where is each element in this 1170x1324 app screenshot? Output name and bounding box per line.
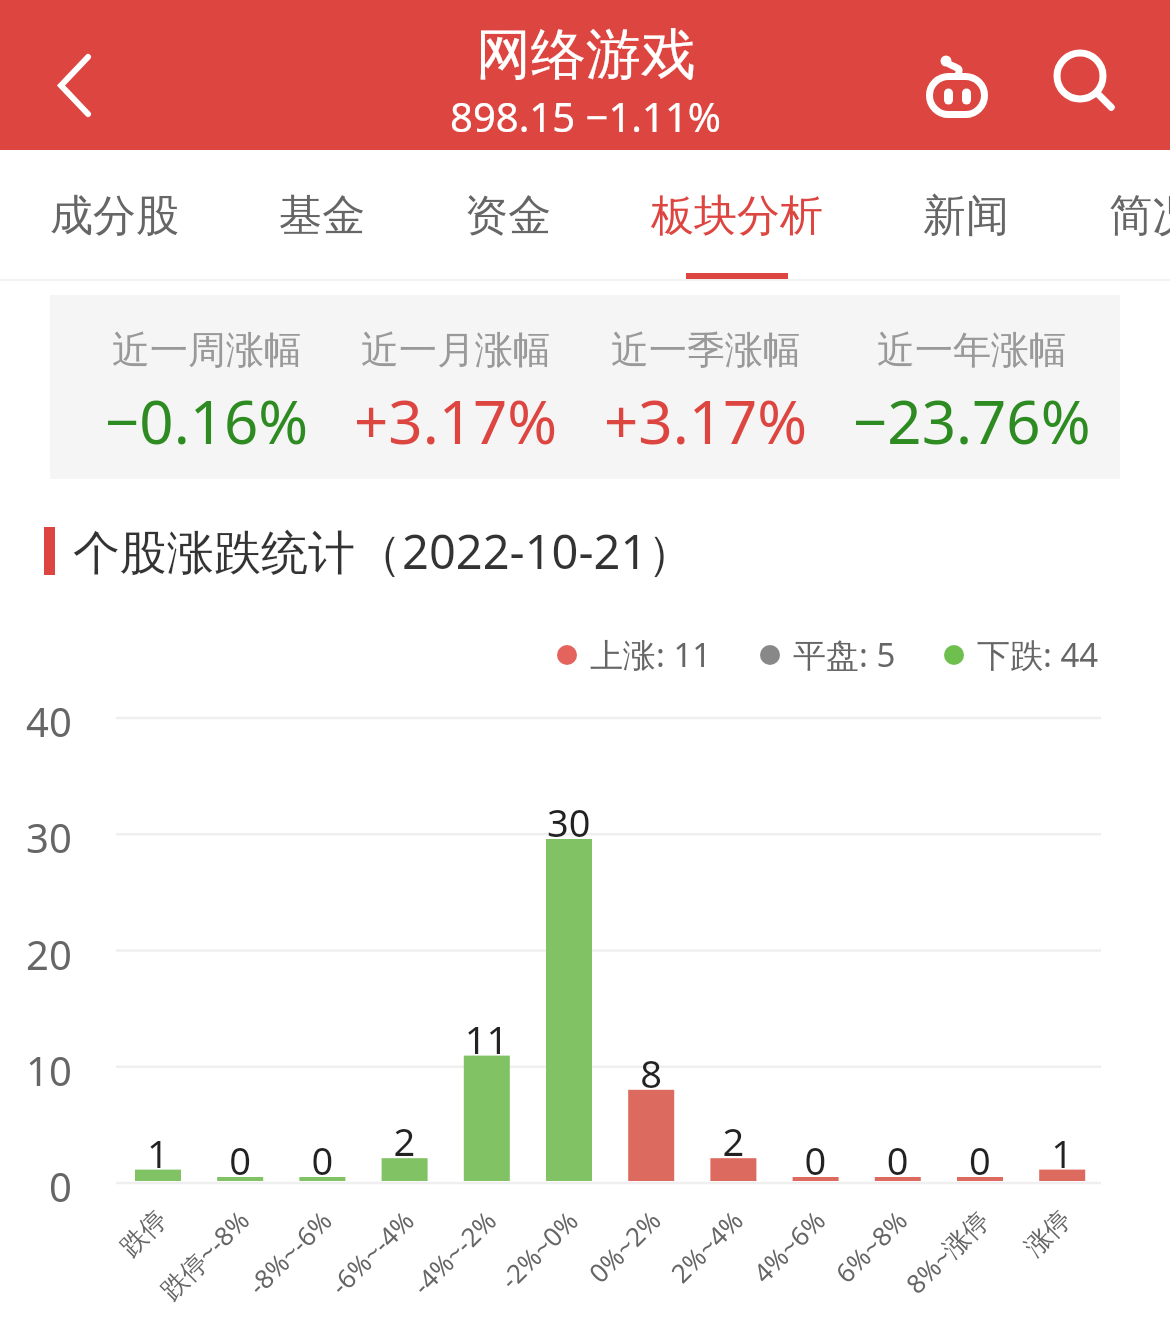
button[interactable]: 资金 (415, 150, 601, 281)
staticText: 平盘: 5 (793, 632, 896, 677)
staticText: 简况 (1109, 189, 1170, 243)
staticText: 个股涨跌统计（2022-10-21） (73, 519, 695, 583)
button[interactable]: Back (24, 35, 124, 135)
button[interactable]: 新闻 (873, 150, 1059, 281)
button[interactable]: 基金 (229, 150, 415, 281)
staticText: 898.15 −1.11% (450, 89, 721, 143)
staticText: 上涨: 11 (590, 632, 712, 677)
button[interactable]: 简况 (1059, 150, 1170, 281)
staticText: 资金 (465, 189, 551, 243)
staticText: 近一年涨幅 (877, 326, 1067, 374)
staticText: 板块分析 (651, 189, 823, 243)
button[interactable]: 成分股 (0, 150, 229, 281)
staticText: 新闻 (923, 189, 1009, 243)
staticText: 基金 (279, 189, 365, 243)
staticText: −0.16% (105, 380, 309, 462)
staticText: −23.76% (853, 380, 1091, 462)
staticText: 网络游戏 (476, 20, 696, 89)
staticText: 近一周涨幅 (112, 326, 302, 374)
staticText: 下跌: 44 (977, 632, 1099, 677)
button[interactable]: AI assistant (903, 31, 1011, 139)
button[interactable]: 板块分析 (601, 150, 873, 281)
staticText: 近一月涨幅 (361, 326, 551, 374)
button[interactable]: Search (1032, 28, 1140, 136)
staticText: 成分股 (50, 189, 179, 243)
staticText: 近一季涨幅 (611, 326, 801, 374)
staticText: +3.17% (604, 380, 808, 462)
staticText: +3.17% (354, 380, 558, 462)
